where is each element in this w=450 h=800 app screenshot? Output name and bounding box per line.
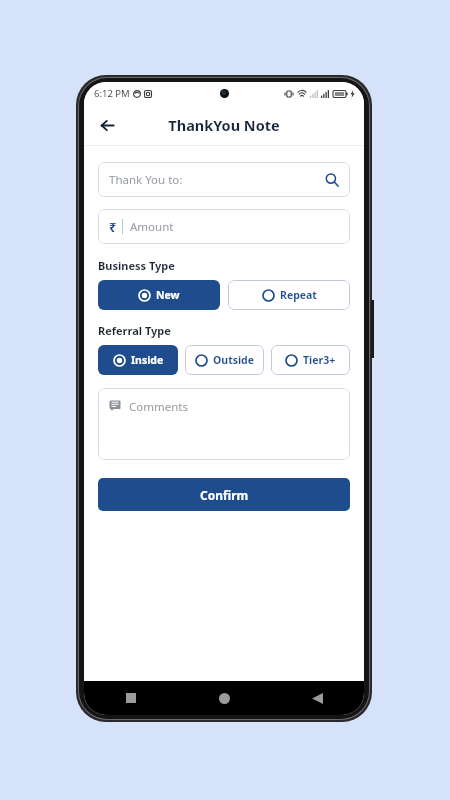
staticText: ThankYou Note (168, 115, 280, 135)
button[interactable]: Back (304, 685, 330, 711)
button[interactable]: ₹ (98, 209, 350, 244)
button[interactable]: Tier3+ (271, 345, 350, 375)
button[interactable]: New (98, 280, 220, 310)
button[interactable]: Recent apps (118, 685, 144, 711)
staticText: Confirm (200, 487, 249, 503)
button[interactable]: Back (90, 108, 124, 142)
staticText: Inside (131, 353, 164, 367)
staticText: Thank You to: (109, 172, 325, 188)
staticText: Tier3+ (303, 353, 336, 367)
button[interactable]: Repeat (228, 280, 350, 310)
button[interactable]: Confirm (98, 478, 350, 511)
staticText: Amount (130, 219, 174, 235)
staticText: Outside (213, 353, 255, 367)
button[interactable]: Inside (98, 345, 178, 375)
staticText: 6:12 PM (94, 87, 130, 100)
staticText: Comments (129, 399, 188, 415)
staticText: New (156, 288, 180, 302)
staticText: Business Type (98, 258, 175, 273)
staticText: Referral Type (98, 323, 171, 338)
other: Search (325, 173, 339, 187)
button[interactable]: Thank You to: (98, 162, 350, 197)
staticText: Repeat (280, 288, 317, 302)
staticText: ₹ (109, 218, 117, 236)
button[interactable]: Comments (98, 388, 350, 460)
button[interactable]: Outside (185, 345, 264, 375)
button[interactable]: Home (211, 685, 237, 711)
